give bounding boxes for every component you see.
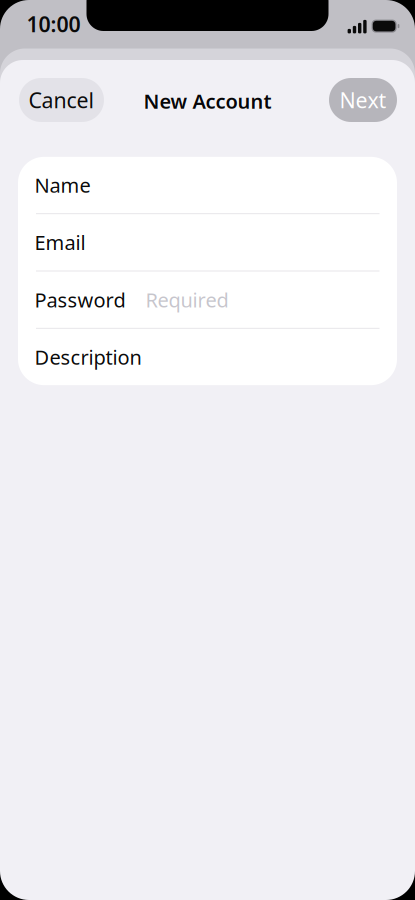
button[interactable]: Password	[18, 271, 397, 328]
button[interactable]: Next	[329, 78, 397, 122]
staticText: Required	[145, 286, 228, 313]
staticText: Cancel	[28, 86, 94, 114]
button[interactable]: Name	[18, 157, 397, 213]
staticText: Name	[34, 172, 90, 198]
staticText: 10:00	[26, 10, 80, 38]
staticText: Email	[34, 229, 85, 256]
staticText: Password	[34, 286, 125, 313]
staticText: Description	[34, 344, 141, 370]
staticText: New Account	[143, 88, 271, 114]
staticText: Next	[339, 86, 386, 114]
button[interactable]: Cancel	[19, 78, 104, 122]
button[interactable]: Email	[18, 214, 397, 270]
button[interactable]: Description	[18, 329, 397, 385]
